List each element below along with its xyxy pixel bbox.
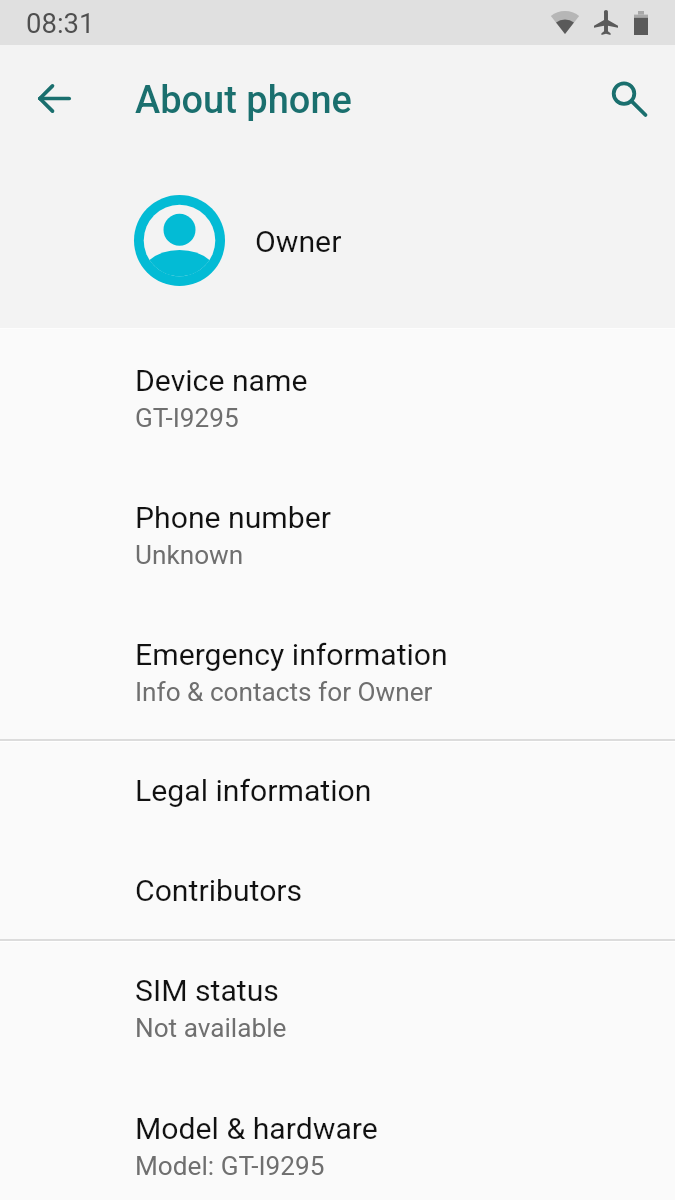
staticText: Model & hardware	[135, 1111, 378, 1146]
staticText: SIM status	[135, 973, 279, 1008]
staticText: Legal information	[135, 773, 372, 808]
button[interactable]: SIM status	[0, 947, 675, 1059]
button[interactable]: Model & hardware	[0, 1085, 675, 1197]
staticText: 08:31	[26, 7, 95, 39]
staticText: About phone	[135, 78, 352, 123]
staticText: Info & contacts for Owner	[135, 677, 433, 708]
button[interactable]: Device name	[0, 337, 675, 449]
button[interactable]: Legal information	[0, 747, 675, 821]
staticText: Emergency information	[135, 637, 448, 672]
button[interactable]: Phone number	[0, 474, 675, 586]
staticText: Phone number	[135, 500, 332, 535]
staticText: Device name	[135, 363, 308, 398]
button[interactable]: Back	[26, 70, 84, 128]
staticText: Unknown	[135, 540, 244, 571]
staticText: Contributors	[135, 873, 303, 908]
staticText: Model: GT-I9295	[135, 1151, 325, 1182]
button[interactable]: Emergency information	[0, 611, 675, 723]
staticText: GT-I9295	[135, 403, 239, 434]
button[interactable]: Search	[601, 70, 659, 128]
button[interactable]: Contributors	[0, 847, 675, 921]
staticText: Owner	[255, 224, 342, 259]
button[interactable]: Owner	[0, 154, 675, 328]
staticText: Not available	[135, 1013, 287, 1044]
